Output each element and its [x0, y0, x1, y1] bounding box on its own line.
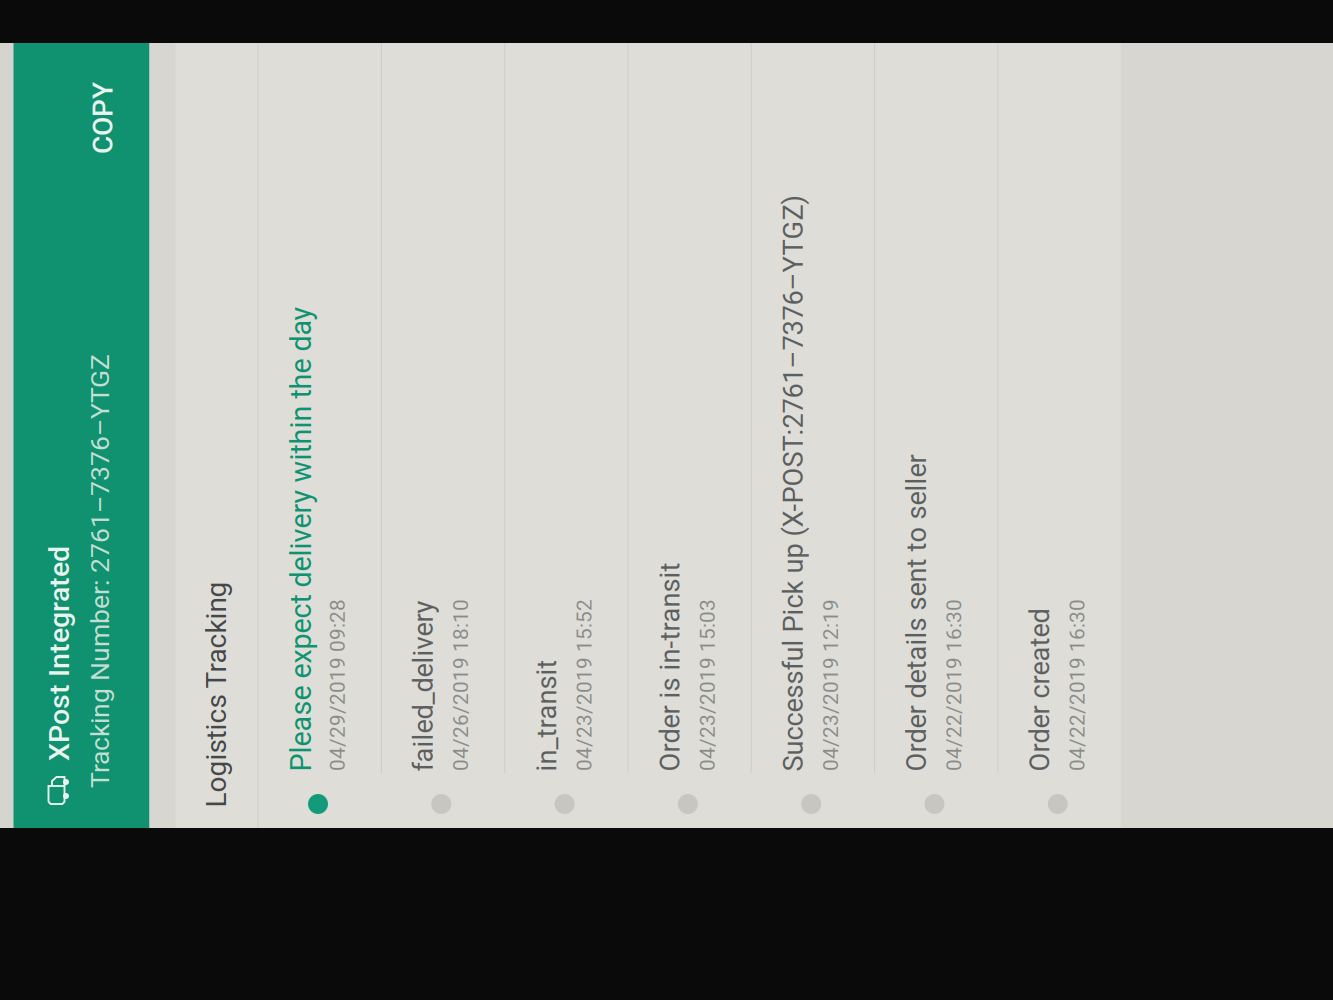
button[interactable]: Order details sent to seller — [301, 617, 1086, 739]
staticText: Order created — [357, 766, 520, 798]
button[interactable]: in_transit — [301, 247, 1086, 369]
button[interactable]: Order created — [301, 740, 1086, 863]
button[interactable]: Order is in-transit — [301, 371, 1086, 493]
button[interactable]: Successful Pick up (X-POST:2761–7376–YTG… — [301, 494, 1086, 616]
staticText: Order details sent to seller — [357, 643, 674, 675]
staticText: 04/22/2019 16:30 — [358, 807, 530, 832]
button[interactable]: Please expect delivery within the day — [301, 1, 1086, 123]
staticText: Successful Pick up (X-POST:2761–7376–YTG… — [357, 519, 933, 551]
staticText: Please expect delivery within the day — [357, 26, 822, 60]
button[interactable]: failed_delivery — [301, 124, 1086, 246]
staticText: 04/22/2019 16:30 — [358, 684, 530, 708]
